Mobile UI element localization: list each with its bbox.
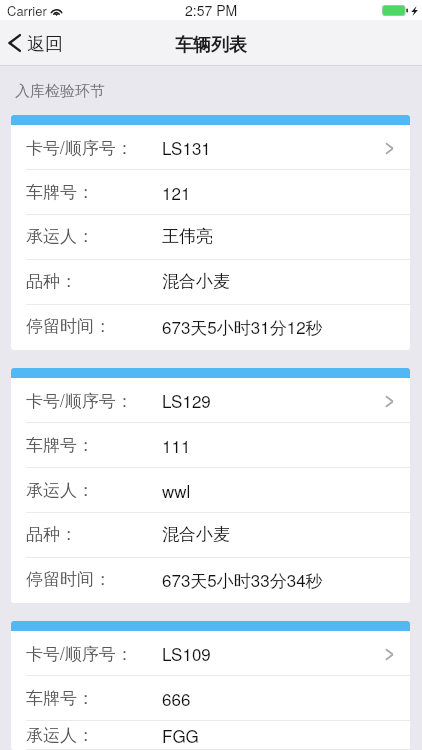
staticText: 卡号/顺序号：	[26, 640, 133, 665]
staticText: 车牌号：	[26, 688, 94, 709]
button[interactable]: 查看详情	[385, 141, 410, 155]
staticText: 品种：	[26, 524, 77, 545]
staticText: 121	[162, 180, 191, 204]
staticText: 品种：	[26, 271, 77, 292]
staticText: 返回	[27, 33, 63, 56]
staticText: 承运人：	[26, 480, 94, 501]
staticText: 王伟亮	[162, 226, 213, 247]
staticText: Carrier	[7, 1, 47, 20]
staticText: 承运人：	[26, 226, 94, 247]
staticText: 停留时间：	[26, 316, 111, 337]
staticText: 承运人：	[26, 725, 94, 746]
staticText: 入库检验环节	[15, 82, 105, 101]
staticText: 混合小麦	[162, 271, 230, 292]
staticText: LS129	[162, 388, 211, 412]
staticText: 666	[162, 686, 191, 710]
staticText: 车牌号：	[26, 435, 94, 456]
staticText: 车牌号：	[26, 182, 94, 203]
button[interactable]: 卡号/顺序号：	[11, 621, 410, 750]
staticText: 卡号/顺序号：	[26, 134, 133, 159]
button[interactable]: 返回	[0, 22, 75, 63]
staticText: 卡号/顺序号：	[26, 387, 133, 412]
staticText: LS131	[162, 135, 211, 159]
staticText: 停留时间：	[26, 569, 111, 590]
button[interactable]: 查看详情	[385, 394, 410, 408]
staticText: 车辆列表	[175, 34, 247, 57]
button[interactable]: 卡号/顺序号：	[11, 115, 410, 350]
staticText: FGG	[162, 723, 199, 747]
staticText: 673天5小时31分12秒	[162, 314, 323, 339]
staticText: 混合小麦	[162, 524, 230, 545]
button[interactable]: 卡号/顺序号：	[11, 368, 410, 603]
staticText: wwl	[162, 478, 191, 502]
staticText: 2:57 PM	[185, 0, 238, 20]
staticText: LS109	[162, 641, 211, 665]
button[interactable]: 查看详情	[385, 647, 410, 661]
staticText: 673天5小时33分34秒	[162, 567, 323, 592]
staticText: 111	[162, 433, 191, 457]
